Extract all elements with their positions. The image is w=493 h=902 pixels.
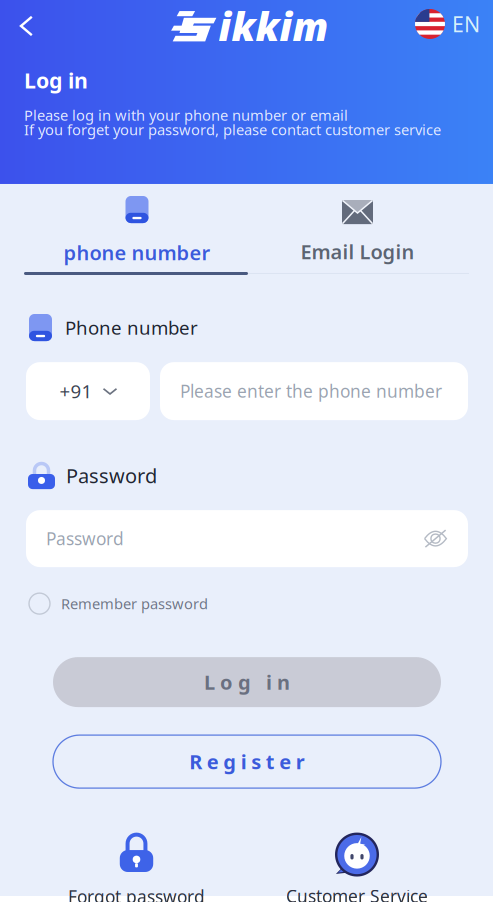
- staticText: Email Login: [300, 238, 414, 265]
- staticText: ikkim: [218, 0, 328, 52]
- staticText: EN: [452, 10, 480, 38]
- staticText: Log in: [24, 66, 88, 94]
- staticText: Password: [46, 527, 124, 550]
- button[interactable]: Email Login: [274, 184, 441, 272]
- button[interactable]: Forgot password: [58, 832, 215, 902]
- button[interactable]: phone number: [0, 184, 274, 272]
- button[interactable]: Customer Service: [277, 833, 437, 902]
- button[interactable]: Country code +91: [26, 362, 150, 420]
- button[interactable]: Log in: [53, 657, 441, 707]
- button[interactable]: Password field: [26, 510, 468, 567]
- staticText: Customer Service: [286, 885, 428, 902]
- button[interactable]: Language English: [417, 0, 482, 40]
- staticText: Please enter the phone number: [180, 380, 442, 403]
- staticText: Log in: [204, 669, 290, 695]
- button[interactable]: Register: [53, 735, 441, 788]
- staticText: Forgot password: [68, 885, 205, 902]
- button[interactable]: Remember password: [29, 593, 208, 614]
- staticText: +91: [59, 379, 92, 403]
- staticText: Phone number: [65, 315, 198, 340]
- button[interactable]: Back: [0, 0, 46, 40]
- staticText: Register: [189, 748, 305, 775]
- staticText: phone number: [63, 239, 210, 266]
- staticText: Password: [66, 462, 157, 489]
- button[interactable]: Phone number field: [160, 362, 468, 420]
- staticText: Remember password: [61, 594, 208, 613]
- staticText: Please log in with your phone number or …: [24, 105, 348, 125]
- staticText: If you forget your password, please cont…: [24, 120, 441, 139]
